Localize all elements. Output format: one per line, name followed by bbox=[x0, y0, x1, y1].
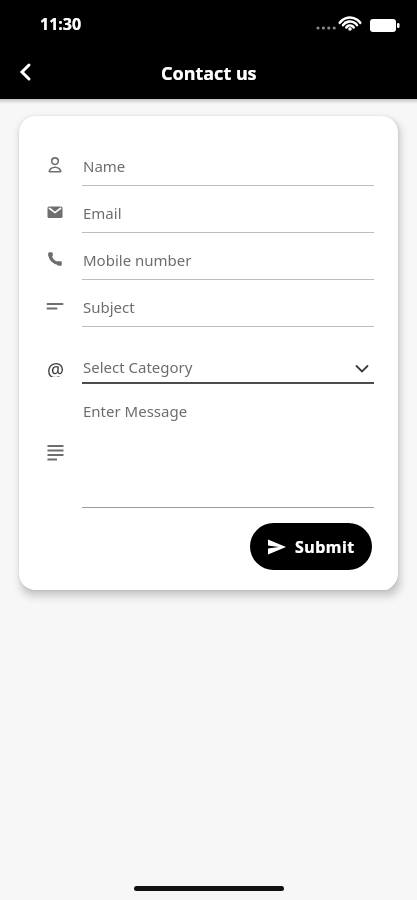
button[interactable] bbox=[45, 347, 375, 387]
button[interactable] bbox=[45, 193, 375, 237]
staticText: Submit bbox=[295, 536, 355, 558]
staticText: Mobile number bbox=[83, 250, 192, 270]
button[interactable] bbox=[4, 56, 48, 88]
button[interactable] bbox=[63, 396, 393, 508]
staticText: Select Category bbox=[83, 357, 193, 377]
button[interactable] bbox=[45, 240, 375, 284]
staticText: Name bbox=[83, 156, 126, 176]
staticText: Email bbox=[83, 203, 122, 223]
staticText: Subject bbox=[83, 297, 135, 317]
staticText: Enter Message bbox=[83, 401, 188, 421]
button[interactable] bbox=[45, 287, 375, 331]
staticText: @ bbox=[47, 357, 65, 377]
button[interactable] bbox=[45, 146, 375, 190]
staticText: Contact us bbox=[161, 61, 257, 86]
staticText: 11:30 bbox=[40, 13, 82, 35]
button[interactable]: Submit bbox=[250, 523, 372, 570]
